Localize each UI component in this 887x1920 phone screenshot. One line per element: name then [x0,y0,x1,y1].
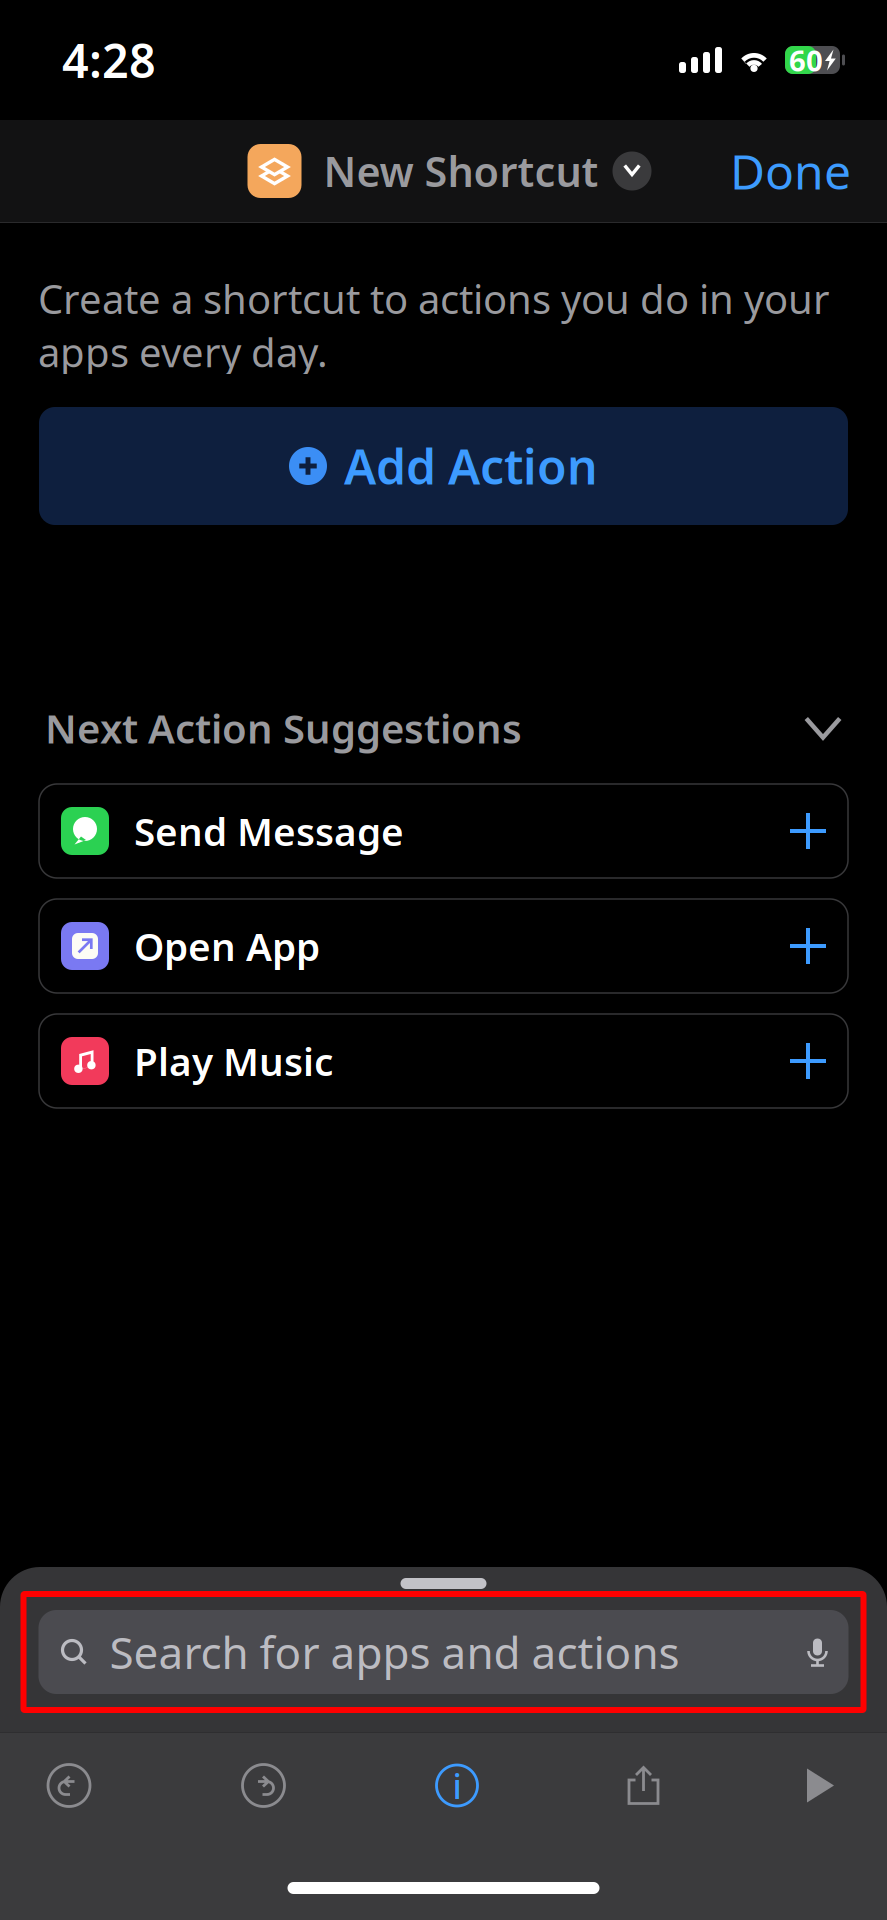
staticText: New Shortcut [323,144,598,198]
staticText: Next Action Suggestions [45,701,522,754]
button[interactable]: Add Action [39,407,848,525]
staticText: 60 [789,40,823,79]
staticText: 4:28 [62,29,156,91]
staticText: Done [730,139,851,203]
button[interactable]: New Shortcut [235,144,651,198]
button[interactable]: Run [807,1768,834,1802]
button[interactable]: Next Action Suggestions [45,702,842,754]
button[interactable]: Play Music [39,1014,848,1108]
staticText: Send Message [134,805,404,857]
button[interactable]: Send Message [39,784,848,878]
button[interactable]: Share [626,1765,660,1806]
staticText: i [452,1762,461,1808]
staticText: Add Action [344,434,598,498]
button[interactable]: Undo [45,1761,93,1809]
button[interactable]: Redo [239,1761,287,1809]
staticText: Search for apps and actions [109,1623,679,1681]
button[interactable]: Details [434,1762,480,1808]
button[interactable]: Search for apps and actions [38,1610,848,1694]
staticText: Create a shortcut to actions you do in y… [38,272,830,325]
button[interactable]: Done [710,129,861,213]
button[interactable]: Open App [39,899,848,993]
staticText: Open App [134,920,320,972]
staticText: apps every day. [38,325,328,378]
staticText: Play Music [134,1035,333,1087]
